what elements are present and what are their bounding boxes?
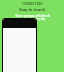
- staticText: CONNECTING: [22, 2, 43, 6]
- staticText: Stay in touch: [19, 7, 45, 12]
- staticText: Share moments with friends and family ev…: [15, 14, 50, 20]
